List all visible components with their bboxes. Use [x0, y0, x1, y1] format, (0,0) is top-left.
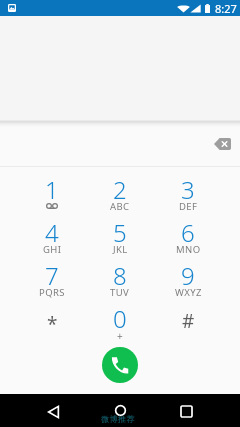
staticText: 微博推荐	[101, 414, 135, 424]
staticText: ABC	[110, 200, 130, 213]
button[interactable]: Back	[39, 397, 67, 425]
button[interactable]: Backspace	[209, 131, 235, 157]
staticText: +	[117, 329, 123, 343]
button[interactable]: 4	[18, 210, 86, 253]
button[interactable]: Home	[106, 396, 134, 424]
staticText: PQRS	[39, 286, 65, 299]
staticText: 8:27	[215, 1, 237, 16]
staticText: 1	[45, 173, 59, 206]
button[interactable]: Call	[102, 347, 138, 383]
staticText: 7	[45, 259, 59, 292]
staticText: 2	[113, 173, 127, 206]
button[interactable]: 6	[154, 210, 222, 253]
staticText: 4	[45, 216, 59, 249]
staticText: TUV	[110, 286, 130, 299]
button[interactable]: 0	[86, 296, 154, 339]
staticText: 5	[113, 216, 127, 249]
staticText: JKL	[113, 243, 128, 256]
staticText: GHI	[43, 243, 62, 256]
button[interactable]: 7	[18, 253, 86, 296]
button[interactable]: 1	[18, 167, 86, 210]
staticText: DEF	[179, 200, 198, 213]
staticText: MNO	[176, 243, 201, 256]
staticText: WXYZ	[175, 286, 202, 299]
staticText: 6	[181, 216, 195, 249]
button[interactable]: #	[154, 296, 222, 339]
staticText: #	[182, 308, 195, 334]
button[interactable]: 2	[86, 167, 154, 210]
staticText: 9	[181, 259, 195, 292]
staticText: *	[47, 311, 58, 337]
staticText: 3	[181, 173, 195, 206]
staticText: 0	[113, 302, 127, 335]
staticText: 8	[113, 259, 127, 292]
button[interactable]: 9	[154, 253, 222, 296]
button[interactable]: 3	[154, 167, 222, 210]
button[interactable]: 5	[86, 210, 154, 253]
button[interactable]: 8	[86, 253, 154, 296]
button[interactable]: *	[18, 296, 86, 339]
button[interactable]: Recents	[172, 397, 200, 425]
